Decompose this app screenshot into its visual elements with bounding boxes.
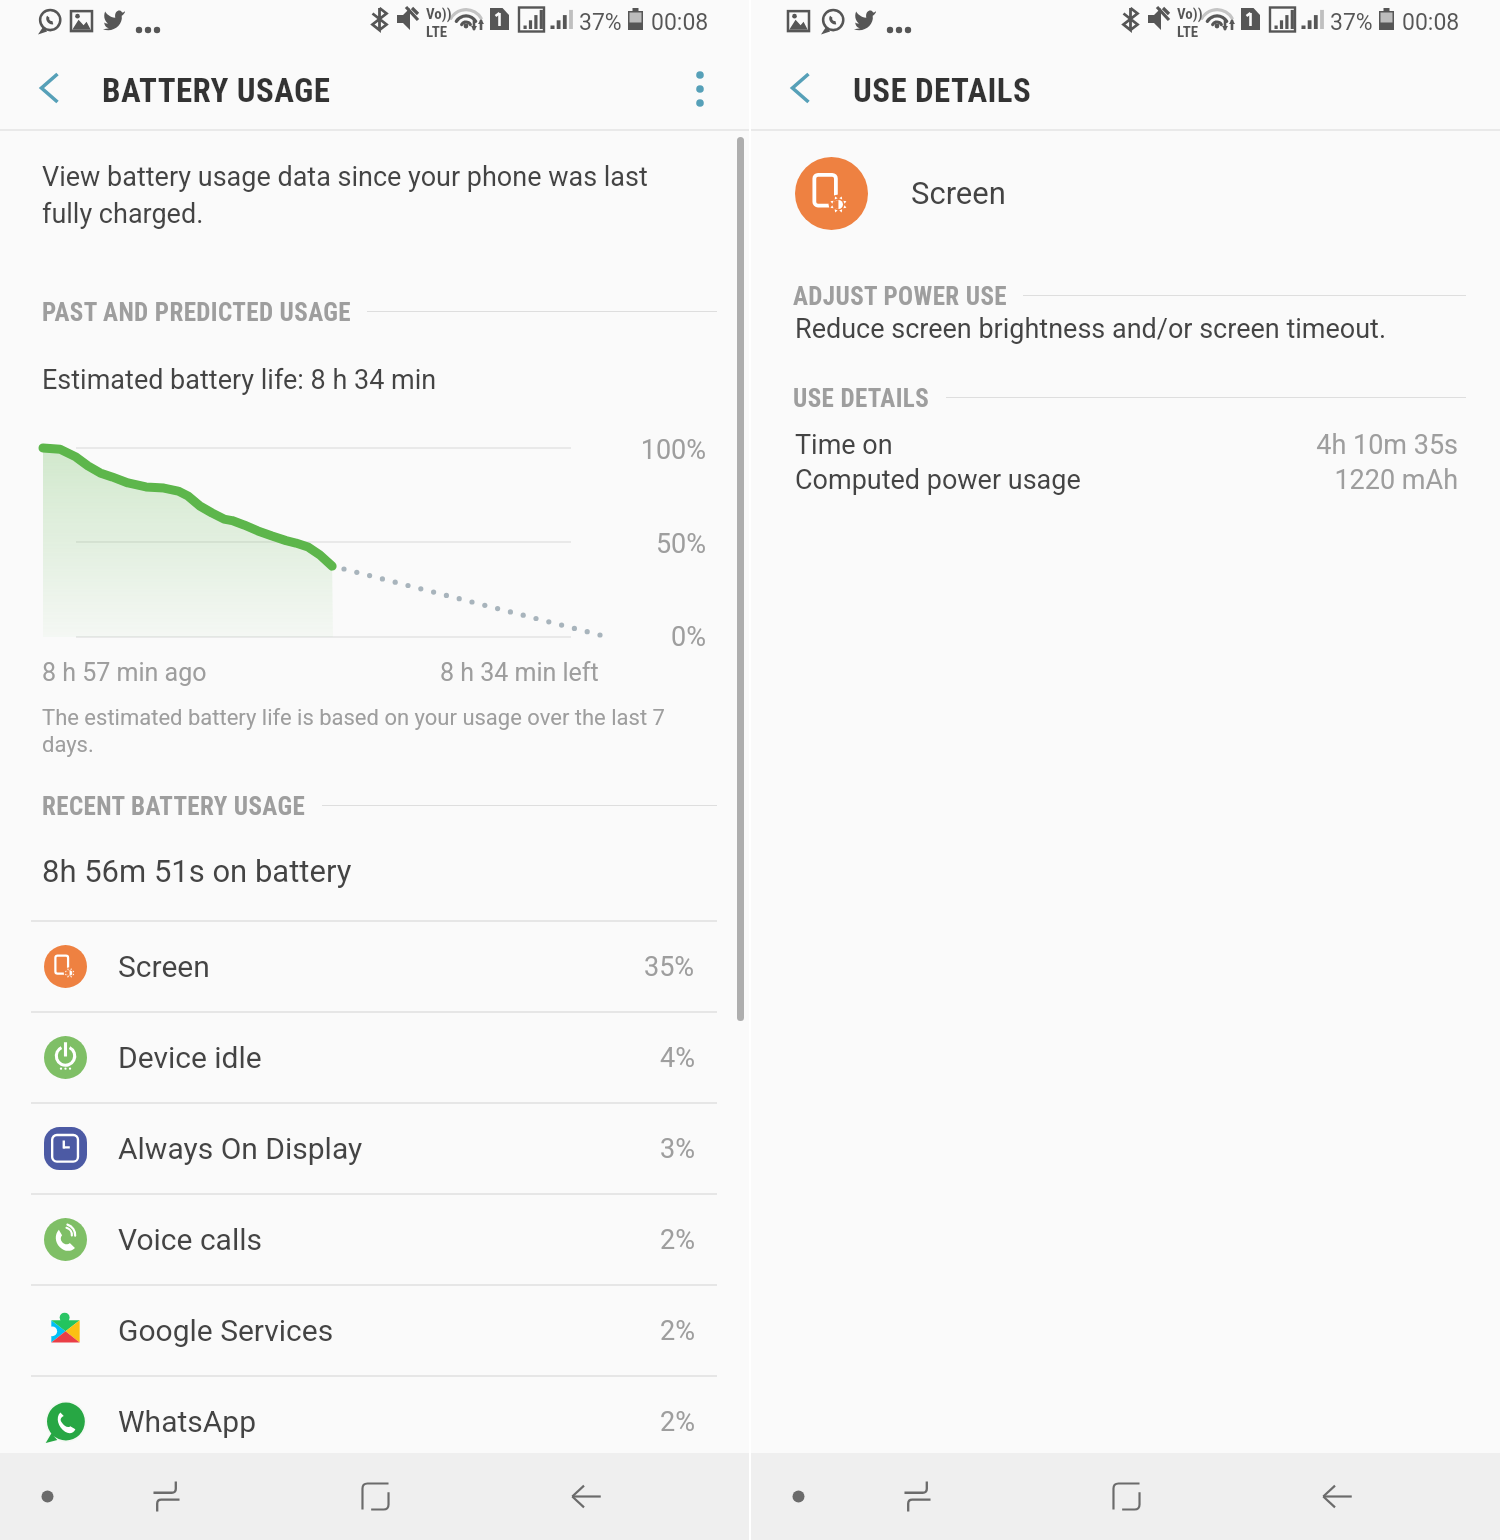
staticText: View battery usage data since your phone…	[42, 161, 667, 229]
staticText: LTE	[426, 23, 448, 41]
staticText: 3%	[660, 1133, 695, 1165]
staticText: BATTERY USAGE	[102, 71, 331, 110]
staticText: Reduce screen brightness and/or screen t…	[795, 313, 1387, 345]
button[interactable]: Navigate up	[751, 46, 851, 131]
button[interactable]: Menu	[20, 1453, 75, 1540]
staticText: ADJUST POWER USE	[793, 282, 1007, 308]
staticText: 8 h 57 min ago	[42, 658, 207, 687]
staticText: Screen	[118, 949, 210, 984]
button[interactable]: Always On Display	[0, 1104, 749, 1193]
button[interactable]: Voice calls	[0, 1195, 749, 1284]
staticText: 37%	[1330, 9, 1373, 36]
staticText: 1220 mAh	[751, 464, 1458, 496]
staticText: Vo))	[426, 5, 452, 23]
button[interactable]: Screen	[0, 922, 749, 1011]
staticText: Always On Display	[118, 1131, 363, 1166]
staticText: PAST AND PREDICTED USAGE	[42, 298, 351, 324]
staticText: RECENT BATTERY USAGE	[42, 792, 306, 818]
staticText: 0%	[0, 621, 706, 653]
staticText: 4%	[660, 1042, 695, 1074]
staticText: 8 h 34 min left	[440, 658, 599, 687]
button[interactable]: WhatsApp	[0, 1377, 749, 1466]
staticText: Google Services	[118, 1313, 334, 1348]
button[interactable]: Back	[1310, 1453, 1365, 1540]
button[interactable]: Recent apps	[890, 1453, 945, 1540]
staticText: USE DETAILS	[793, 384, 930, 410]
staticText: 2%	[660, 1224, 695, 1256]
staticText: Device idle	[118, 1040, 262, 1075]
staticText: Screen	[911, 175, 1006, 211]
staticText: 2%	[660, 1315, 695, 1347]
button[interactable]: Screen	[751, 143, 1500, 243]
staticText: 00:08	[651, 9, 709, 36]
staticText: WhatsApp	[118, 1404, 257, 1439]
button[interactable]: Menu	[771, 1453, 826, 1540]
staticText: 2%	[660, 1406, 695, 1438]
staticText: Time on	[795, 429, 893, 461]
staticText: 50%	[0, 528, 706, 560]
staticText: Vo))	[1177, 5, 1203, 23]
staticText: 35%	[644, 951, 695, 983]
staticText: 37%	[579, 9, 622, 36]
staticText: Voice calls	[118, 1222, 262, 1257]
button[interactable]: Device idle	[0, 1013, 749, 1102]
staticText: 8h 56m 51s on battery	[42, 853, 352, 889]
staticText: 100%	[0, 434, 706, 466]
staticText: Computed power usage	[795, 464, 1081, 496]
button[interactable]: Home	[1099, 1453, 1154, 1540]
button[interactable]: Recent apps	[139, 1453, 194, 1540]
staticText: Estimated battery life: 8 h 34 min	[42, 364, 437, 396]
staticText: LTE	[1177, 23, 1199, 41]
button[interactable]: Back	[559, 1453, 614, 1540]
button[interactable]: Google Services	[0, 1286, 749, 1375]
button[interactable]: More options	[650, 46, 749, 131]
staticText: The estimated battery life is based on y…	[42, 705, 697, 757]
staticText: USE DETAILS	[853, 71, 1032, 110]
button[interactable]: Home	[348, 1453, 403, 1540]
staticText: 00:08	[1402, 9, 1460, 36]
staticText: 4h 10m 35s	[751, 429, 1458, 461]
button[interactable]: Navigate up	[0, 46, 100, 131]
